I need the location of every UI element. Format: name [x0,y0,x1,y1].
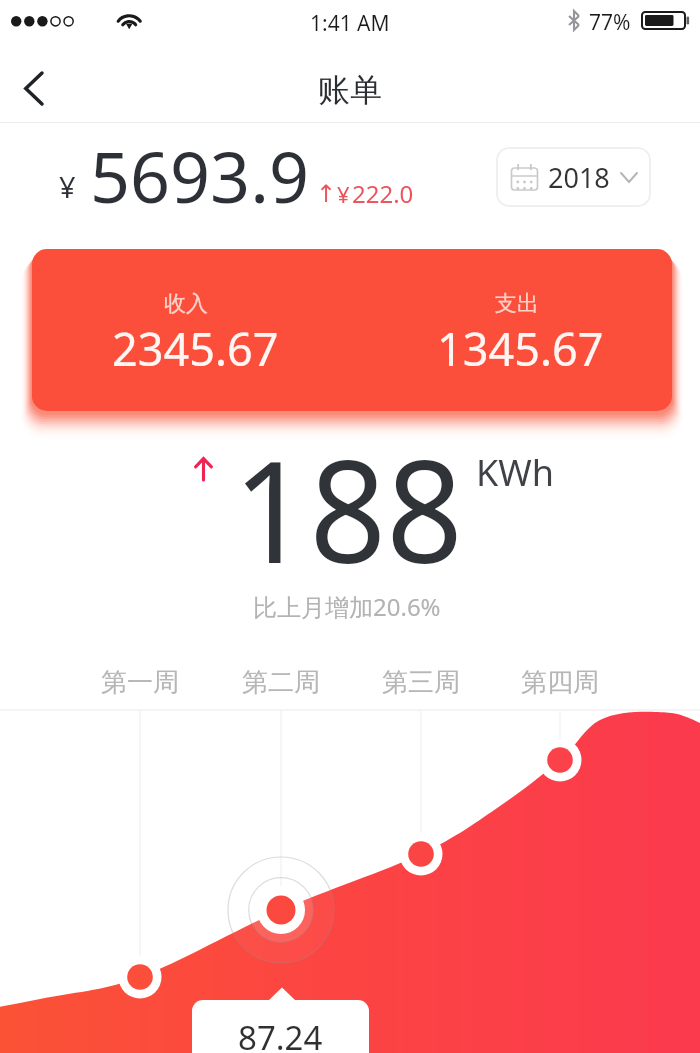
button[interactable]: 第三周 [366,660,476,704]
staticText: ↑ [316,180,337,208]
staticText: 1:41 AM [310,9,390,38]
button[interactable]: 第四周 data point [539,739,582,782]
staticText: 5693.9 [90,128,309,223]
staticText: 比上月增加20.6% [253,590,441,623]
button[interactable]: 第四周 [505,660,615,704]
staticText: 第三周 [382,666,460,699]
button[interactable]: 第二周 [226,660,336,704]
button[interactable]: 收入 [32,249,672,411]
staticText: 第四周 [521,666,599,699]
button[interactable]: 第一周 data point [119,956,162,999]
staticText: 188 [233,412,463,604]
staticText: 第二周 [242,666,320,699]
staticText: 222.0 [352,177,414,210]
staticText: 2018 [548,159,610,196]
staticText: 87.24 [238,1015,323,1053]
button[interactable]: Back [0,55,66,121]
button[interactable]: 87.24 [192,1000,369,1053]
staticText: 1345.67 [437,318,604,379]
staticText: 账单 [318,70,382,110]
button[interactable]: 2018 [496,147,651,207]
staticText: 支出 [495,290,539,318]
staticText: 77% [589,8,631,37]
button[interactable]: 第二周 data point [257,886,305,934]
staticText: 第一周 [101,666,179,699]
button[interactable]: 第一周 [85,660,195,704]
staticText: KWh [476,448,555,497]
button[interactable]: 第三周 data point [400,833,443,876]
staticText: ¥ [59,167,76,206]
staticText: 收入 [164,290,208,318]
staticText: ¥ [337,179,350,209]
staticText: 2345.67 [112,318,279,379]
